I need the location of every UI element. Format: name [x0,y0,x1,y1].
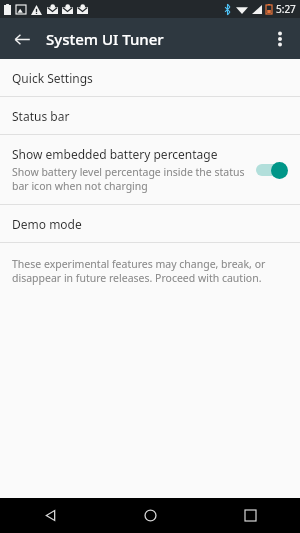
staticText: Quick Settings [12,70,93,86]
staticText: Show embedded battery percentage [12,146,218,162]
button[interactable]: Quick Settings [0,59,300,96]
staticText: 5:27 [276,2,296,16]
button[interactable]: Toggle embedded battery percentage [254,160,288,180]
button[interactable]: Demo mode [0,205,300,242]
button[interactable]: Show embedded battery percentage [0,135,300,204]
button[interactable]: Home [100,498,200,533]
button[interactable]: Status bar [0,97,300,134]
button[interactable]: Back [0,498,100,533]
button[interactable]: More options [262,21,298,57]
staticText: System UI Tuner [46,29,164,49]
button[interactable]: Navigate up [4,21,40,57]
button[interactable]: Recent apps [200,498,300,533]
staticText: These experimental features may change, … [12,257,266,285]
staticText: Status bar [12,108,70,124]
staticText: Show battery level percentage inside the… [12,165,245,193]
staticText: Demo mode [12,216,82,232]
